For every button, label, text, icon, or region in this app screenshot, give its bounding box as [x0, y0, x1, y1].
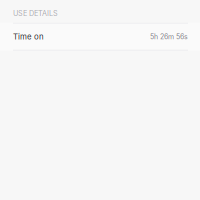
staticText: USE DETAILS: [13, 9, 58, 18]
staticText: 5h 26m 56s: [150, 32, 188, 41]
staticText: Time on: [13, 32, 44, 41]
button[interactable]: Time on: [0, 23, 200, 51]
